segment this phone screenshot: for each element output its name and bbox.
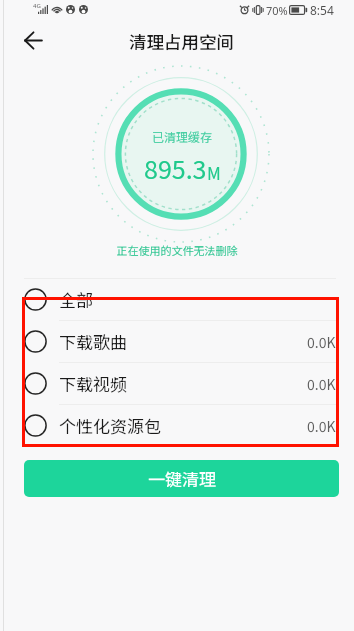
staticText: 8:54 [310, 2, 334, 18]
button[interactable]: 下载视频 [0, 363, 354, 404]
staticText: 一键清理 [148, 466, 216, 491]
staticText: 已清理缓存 [152, 128, 213, 145]
button[interactable]: 一键清理 [24, 460, 339, 497]
staticText: 清理占用空间 [129, 29, 234, 54]
staticText: 895.3 [144, 150, 207, 186]
staticText: 正在使用的文件无法删除 [0, 242, 354, 258]
button[interactable]: 全部 [0, 279, 354, 320]
staticText: 全部 [59, 287, 93, 312]
staticText: M [207, 160, 221, 185]
button[interactable]: 下载歌曲 [0, 321, 354, 362]
staticText: 下载视频 [59, 371, 127, 396]
staticText: 下载歌曲 [59, 329, 127, 354]
staticText: 个性化资源包 [59, 413, 161, 438]
staticText: 4G [33, 2, 41, 10]
staticText: 70% [266, 3, 288, 18]
button[interactable]: 个性化资源包 [0, 405, 354, 446]
staticText: 0.0K [307, 416, 336, 436]
staticText: 0.0K [307, 374, 336, 394]
button[interactable]: Back [11, 20, 55, 61]
staticText: 0.0K [307, 332, 336, 352]
